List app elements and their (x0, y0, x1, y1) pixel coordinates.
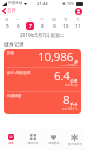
staticText: 摘要 (8, 141, 14, 145)
staticText: 医疗急救卡 (68, 142, 82, 146)
button[interactable]: 7 (26, 22, 34, 30)
button[interactable]: 五月 (0, 8, 19, 14)
button[interactable]: 健身记录 (22, 129, 43, 150)
staticText: 11 (75, 23, 81, 30)
staticText: 五 (64, 17, 68, 21)
staticText: 千卡 (70, 102, 78, 107)
staticText: 10,986 (38, 49, 74, 65)
staticText: 70% (67, 1, 75, 6)
staticText: 步行+跑步距离 (7, 70, 31, 75)
button[interactable]: 健康数据 (43, 129, 64, 150)
staticText: 21:44 (37, 1, 48, 7)
staticText: 步数 (7, 51, 15, 56)
staticText: 健身记录 (4, 41, 24, 47)
staticText: 五月 (7, 8, 17, 14)
staticText: 一 (16, 17, 20, 21)
staticText: 目标 300千卡 (62, 107, 78, 111)
staticText: 目标 8公里 (65, 83, 78, 87)
staticText: 2019年5月7日 星期二 (20, 32, 65, 38)
button[interactable]: Profile (75, 8, 82, 15)
button[interactable]: 6 (14, 22, 22, 30)
button[interactable]: 步数 (4, 49, 81, 67)
staticText: 5 (6, 23, 9, 30)
staticText: 公里 (70, 78, 78, 83)
button[interactable]: 医疗急救卡 (64, 129, 85, 150)
staticText: 健康数据 (48, 141, 60, 145)
button[interactable]: 步行+跑步距离 (4, 68, 81, 91)
button[interactable]: 8 (38, 22, 46, 30)
staticText: 目标 12,000步 (61, 64, 78, 66)
staticText: 6 (17, 23, 20, 30)
staticText: 四 (52, 17, 56, 21)
button[interactable]: 摘要 (0, 129, 22, 150)
staticText: 6.4 (54, 68, 70, 84)
staticText: 已燃烧量 (7, 94, 22, 99)
staticText: 健身记录 (27, 141, 39, 145)
staticText: 三 (40, 17, 44, 21)
staticText: 8 (41, 23, 44, 30)
staticText: 10 (63, 23, 69, 30)
staticText: 日 (5, 17, 9, 21)
staticText: 9 (53, 23, 56, 30)
button[interactable]: 10 (62, 22, 70, 30)
button[interactable]: 9 (50, 22, 58, 30)
staticText: 步 (74, 59, 78, 64)
button[interactable]: 5 (3, 22, 11, 30)
staticText: 六 (76, 17, 80, 21)
staticText: 7 (29, 23, 32, 30)
button[interactable]: 已燃烧量 (4, 92, 81, 114)
staticText: 8 (63, 92, 70, 108)
button[interactable]: 11 (74, 22, 82, 30)
staticText: 中国移动 (8, 1, 23, 6)
staticText: 二 (28, 17, 32, 21)
